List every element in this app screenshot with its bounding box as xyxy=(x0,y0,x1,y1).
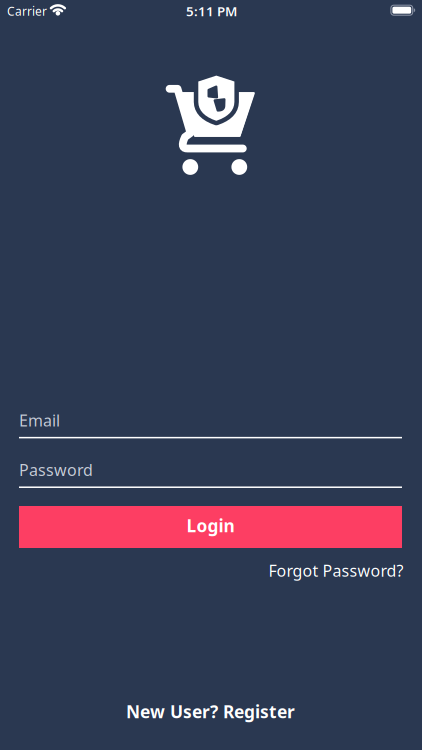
button[interactable]: Password xyxy=(19,459,402,488)
staticText: Login xyxy=(186,514,234,537)
staticText: New User? Register xyxy=(126,700,295,723)
staticText: Forgot Password? xyxy=(268,560,403,581)
button[interactable]: Forgot Password? xyxy=(268,560,403,581)
button[interactable]: New User? Register xyxy=(126,700,295,723)
staticText: Password xyxy=(19,459,93,480)
staticText: Email xyxy=(19,410,60,431)
button[interactable]: Login xyxy=(19,506,402,548)
staticText: 5:11 PM xyxy=(186,2,237,20)
staticText: Carrier xyxy=(7,3,47,19)
button[interactable]: Email xyxy=(19,410,402,438)
